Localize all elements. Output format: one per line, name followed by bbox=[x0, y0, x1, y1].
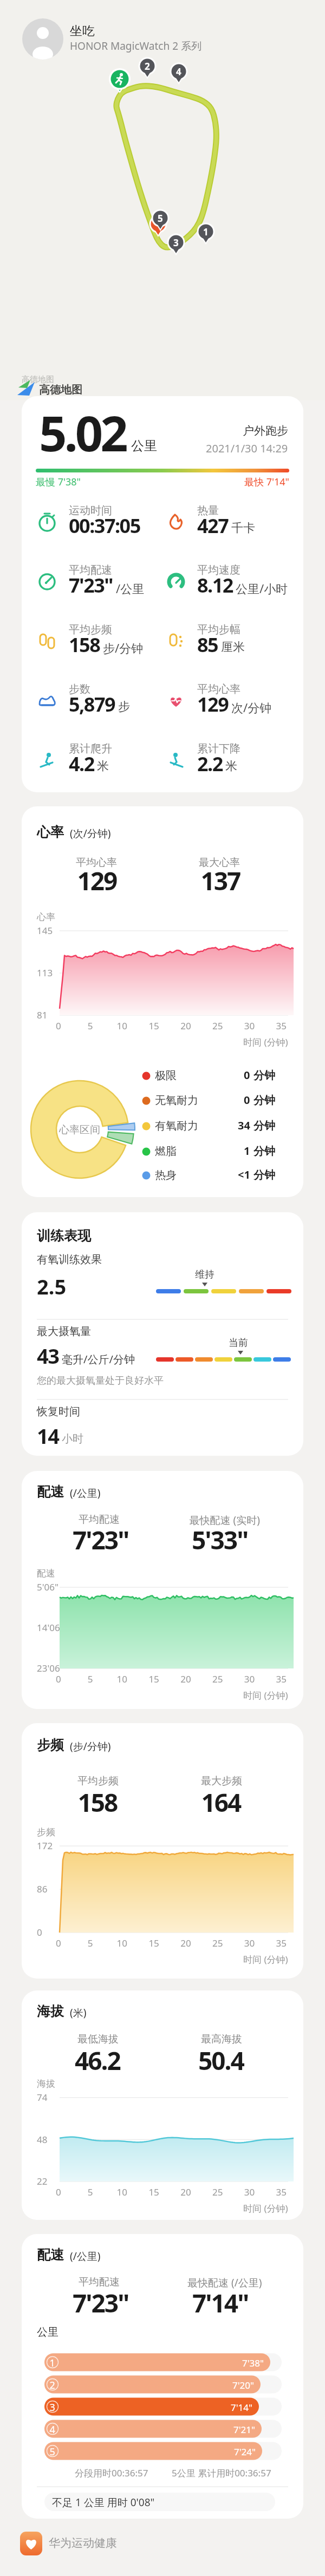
button[interactable] bbox=[0, 54, 325, 396]
button[interactable] bbox=[37, 2353, 282, 2371]
button[interactable] bbox=[37, 2375, 282, 2394]
button[interactable] bbox=[37, 2420, 282, 2438]
button[interactable] bbox=[37, 2397, 282, 2416]
button[interactable] bbox=[37, 2442, 282, 2460]
button[interactable] bbox=[16, 2527, 135, 2560]
button[interactable] bbox=[0, 11, 325, 54]
